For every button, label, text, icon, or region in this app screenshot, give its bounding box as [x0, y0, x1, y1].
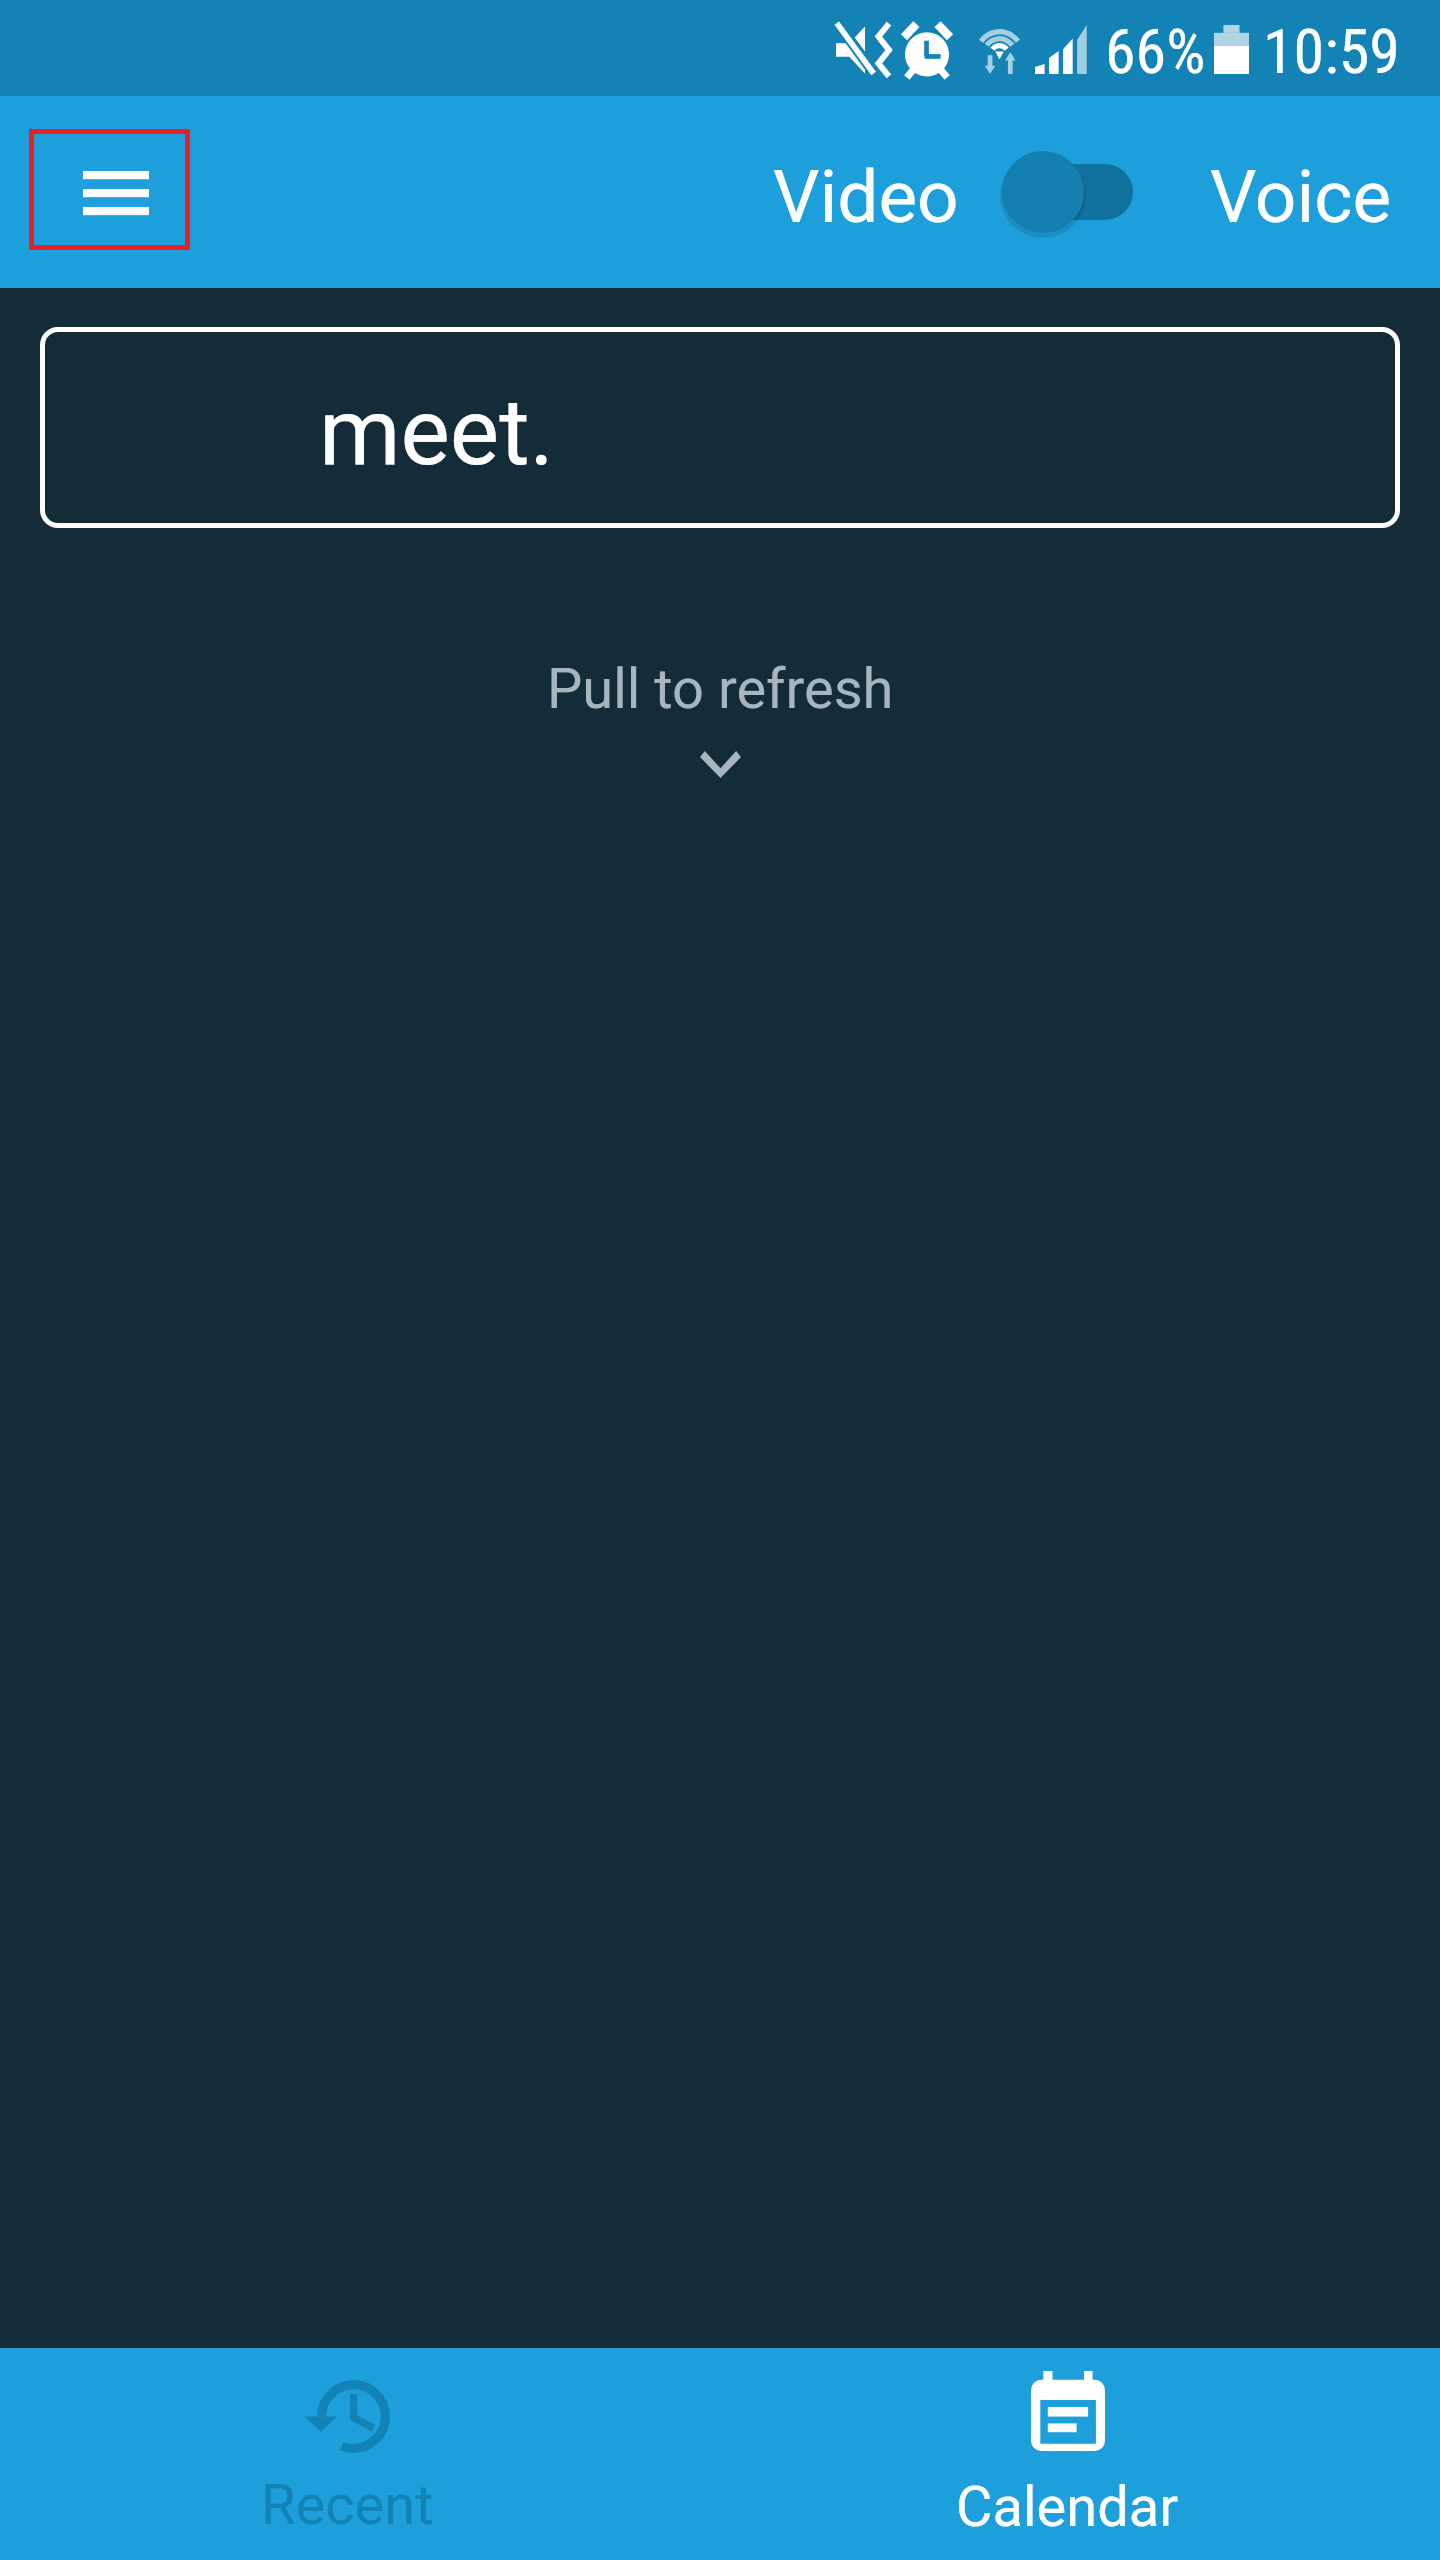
staticText: 10:59	[1263, 15, 1400, 88]
staticText: Video	[773, 154, 959, 240]
staticText: meet.	[319, 378, 555, 487]
staticText: Calendar	[956, 2474, 1179, 2540]
button[interactable]: Switch between video and voice	[1002, 148, 1134, 236]
staticText: 66%	[1105, 15, 1206, 88]
button[interactable]: Open navigation menu	[29, 129, 190, 250]
staticText: Voice	[1210, 154, 1392, 240]
button[interactable]: Recent	[0, 2348, 720, 2560]
button[interactable]: Calendar	[720, 2348, 1440, 2560]
staticText: Recent	[261, 2472, 434, 2538]
button[interactable]: meet.	[40, 327, 1400, 528]
staticText: Pull to refresh	[547, 656, 894, 722]
